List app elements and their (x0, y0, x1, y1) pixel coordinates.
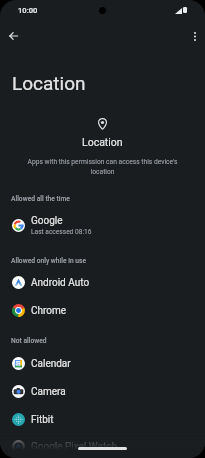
staticText: Location (82, 136, 123, 148)
staticText: Allowed only while in use (11, 257, 87, 265)
staticText: Chrome (31, 305, 67, 317)
button[interactable]: Android Auto (0, 268, 205, 296)
button[interactable]: Google (0, 211, 205, 239)
staticText: Apps with this permission can access thi… (16, 158, 189, 175)
button[interactable]: Camera (0, 377, 205, 405)
button[interactable]: Back (1, 24, 25, 48)
staticText: Last accessed 08:16 (31, 228, 92, 236)
staticText: Fitbit (31, 414, 54, 426)
button[interactable]: More options (183, 24, 205, 48)
staticText: Google (31, 215, 63, 227)
button[interactable]: Fitbit (0, 405, 205, 433)
staticText: 10:00 (18, 6, 38, 15)
button[interactable]: Calendar (0, 349, 205, 377)
button[interactable]: Chrome (0, 296, 205, 324)
staticText: Allowed all the time (11, 195, 70, 203)
button[interactable]: Google Pixel Watch (0, 432, 205, 458)
staticText: Location (12, 72, 86, 94)
staticText: Google Pixel Watch (31, 441, 118, 453)
staticText: Calendar (31, 358, 71, 370)
staticText: Not allowed (11, 337, 47, 345)
staticText: Android Auto (31, 277, 90, 289)
staticText: Camera (31, 386, 66, 398)
